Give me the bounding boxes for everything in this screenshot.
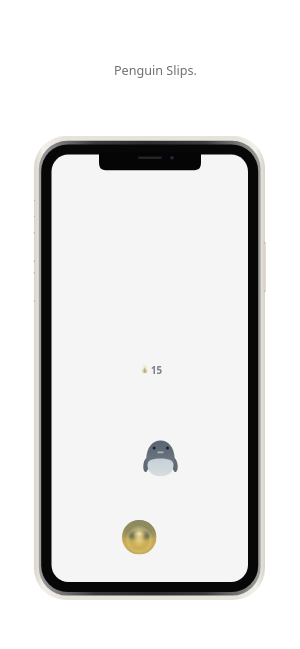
staticText: 15 [151, 364, 163, 377]
staticText: Penguin Slips. [114, 62, 197, 79]
